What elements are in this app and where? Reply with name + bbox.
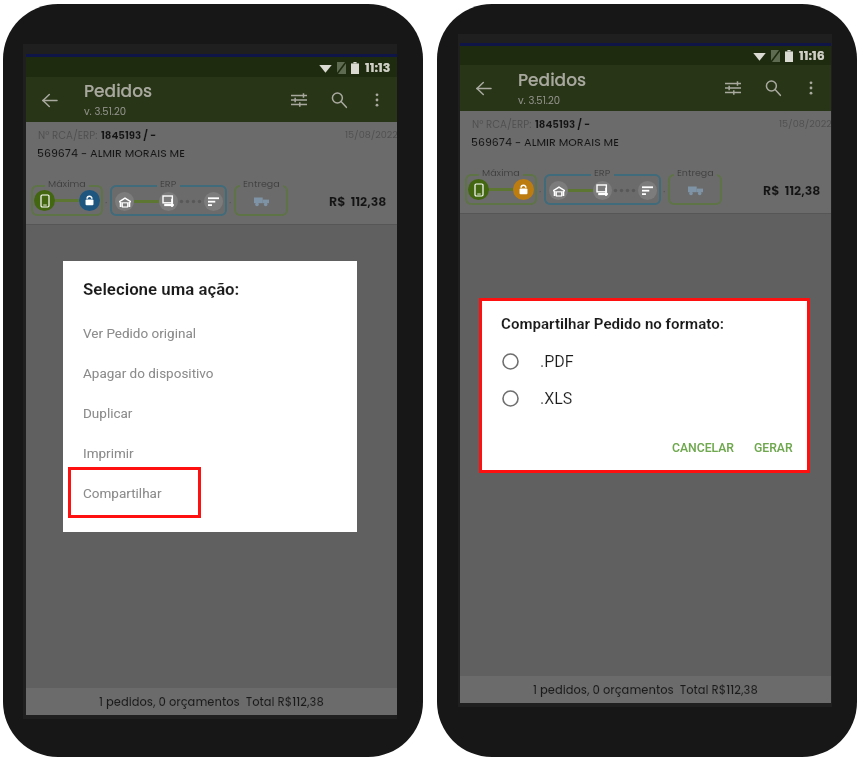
- staticText: Selecione uma ação:: [83, 279, 240, 299]
- button[interactable]: .XLS: [482, 386, 807, 410]
- staticText: 15/08/2022: [779, 117, 831, 130]
- button[interactable]: Ver Pedido original: [63, 313, 357, 353]
- staticText: 569674 - ALMIR MORAIS ME: [471, 135, 619, 150]
- button[interactable]: N° RCA/ERP:: [460, 111, 831, 214]
- staticText: 15/08/2022: [345, 128, 397, 141]
- staticText: N° RCA/ERP:: [38, 128, 101, 142]
- staticText: Entrega: [677, 166, 714, 179]
- button[interactable]: Search: [319, 80, 359, 120]
- staticText: Compartilhar Pedido no formato:: [501, 315, 724, 333]
- staticText: Pedidos: [518, 68, 587, 92]
- staticText: ·: [229, 194, 232, 209]
- button[interactable]: Search: [753, 68, 793, 108]
- button[interactable]: Back: [466, 70, 502, 106]
- staticText: Máxima: [482, 166, 520, 179]
- staticText: Duplicar: [83, 405, 133, 421]
- staticText: R$ 112,38: [329, 193, 387, 210]
- button[interactable]: CANCELAR: [668, 437, 738, 459]
- button[interactable]: Compartilhar: [63, 473, 357, 513]
- button[interactable]: N° RCA/ERP:: [26, 122, 397, 225]
- button[interactable]: Duplicar: [63, 393, 357, 433]
- staticText: ·: [663, 183, 666, 198]
- staticText: .XLS: [540, 389, 573, 408]
- staticText: 1845193 / -: [101, 128, 157, 142]
- staticText: ·: [539, 183, 542, 198]
- staticText: Imprimir: [83, 445, 134, 461]
- button[interactable]: Back: [32, 82, 68, 118]
- staticText: CANCELAR: [672, 441, 734, 455]
- button[interactable]: GERAR: [750, 437, 797, 459]
- staticText: 569674 - ALMIR MORAIS ME: [37, 146, 185, 161]
- staticText: ERP: [160, 177, 177, 190]
- staticText: Máxima: [48, 177, 86, 190]
- staticText: GERAR: [754, 441, 793, 455]
- staticText: ERP: [594, 166, 611, 179]
- button[interactable]: More options: [793, 70, 829, 106]
- staticText: R$ 112,38: [763, 182, 821, 199]
- button[interactable]: .PDF: [482, 349, 807, 373]
- staticText: v. 3.51.20: [84, 104, 126, 118]
- staticText: 11:16: [799, 47, 825, 64]
- button[interactable]: Filter: [279, 80, 319, 120]
- staticText: Pedidos: [84, 79, 153, 103]
- staticText: 1 pedidos, 0 orçamentos Total R$112,38: [533, 682, 758, 698]
- button[interactable]: Filter: [713, 68, 753, 108]
- staticText: N° RCA/ERP:: [472, 117, 535, 131]
- staticText: Apagar do dispositivo: [83, 365, 214, 381]
- button[interactable]: More options: [359, 82, 395, 118]
- staticText: ·: [105, 194, 108, 209]
- staticText: .PDF: [540, 352, 574, 371]
- staticText: Entrega: [243, 177, 280, 190]
- staticText: 11:13: [365, 59, 391, 76]
- staticText: 1845193 / -: [535, 117, 591, 131]
- button[interactable]: Apagar do dispositivo: [63, 353, 357, 393]
- button[interactable]: Imprimir: [63, 433, 357, 473]
- staticText: 1 pedidos, 0 orçamentos Total R$112,38: [99, 694, 324, 710]
- staticText: Compartilhar: [83, 485, 162, 501]
- staticText: Ver Pedido original: [83, 325, 197, 341]
- staticText: v. 3.51.20: [518, 93, 560, 107]
